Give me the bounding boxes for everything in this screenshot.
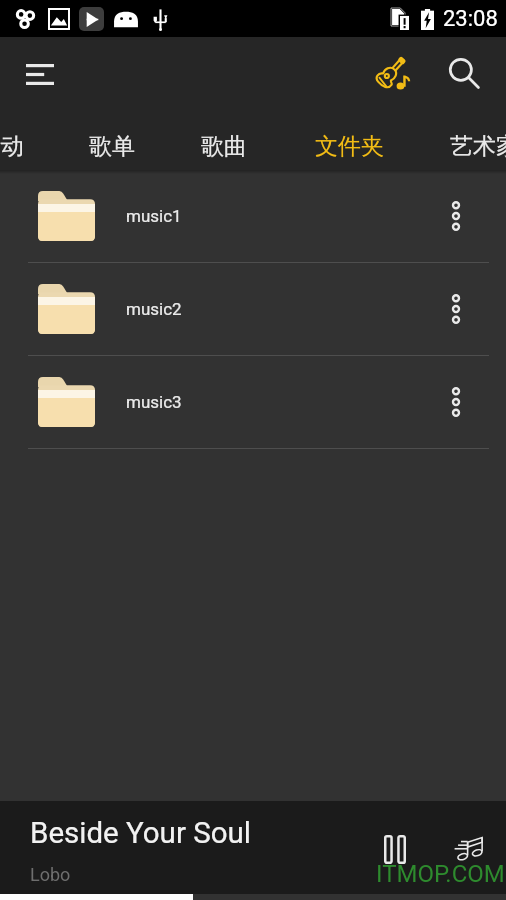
button[interactable]: Pause bbox=[364, 818, 426, 880]
staticText: 文件夹 bbox=[315, 132, 384, 161]
button[interactable]: music2 bbox=[0, 263, 506, 356]
staticText: ITMOP.COM bbox=[376, 860, 505, 888]
staticText: Beside Your Soul bbox=[30, 816, 251, 851]
button[interactable]: Search bbox=[441, 50, 489, 98]
button[interactable]: Music bbox=[368, 50, 416, 98]
button[interactable]: More options bbox=[429, 375, 483, 429]
staticText: 艺术家 bbox=[450, 132, 506, 161]
button[interactable]: 文件夹 bbox=[280, 110, 418, 170]
button[interactable]: music3 bbox=[0, 356, 506, 449]
button[interactable]: More options bbox=[429, 282, 483, 336]
staticText: music3 bbox=[126, 392, 429, 412]
staticText: 歌曲 bbox=[201, 132, 247, 161]
button[interactable]: Beside Your Soul bbox=[0, 801, 506, 894]
staticText: 歌单 bbox=[89, 132, 135, 161]
button[interactable]: music1 bbox=[0, 170, 506, 263]
button[interactable]: 活动 bbox=[0, 110, 29, 170]
staticText: music1 bbox=[126, 206, 429, 226]
button[interactable]: 歌曲 bbox=[168, 110, 280, 170]
staticText: 23:08 bbox=[443, 6, 498, 32]
button[interactable]: 歌单 bbox=[56, 110, 168, 170]
staticText: music2 bbox=[126, 299, 429, 319]
button[interactable]: Playlist bbox=[440, 821, 496, 877]
button[interactable]: 艺术家 bbox=[415, 110, 506, 170]
button[interactable]: More options bbox=[429, 189, 483, 243]
button[interactable]: Menu bbox=[15, 49, 65, 99]
staticText: Lobo bbox=[30, 864, 71, 885]
staticText: 活动 bbox=[0, 132, 24, 161]
